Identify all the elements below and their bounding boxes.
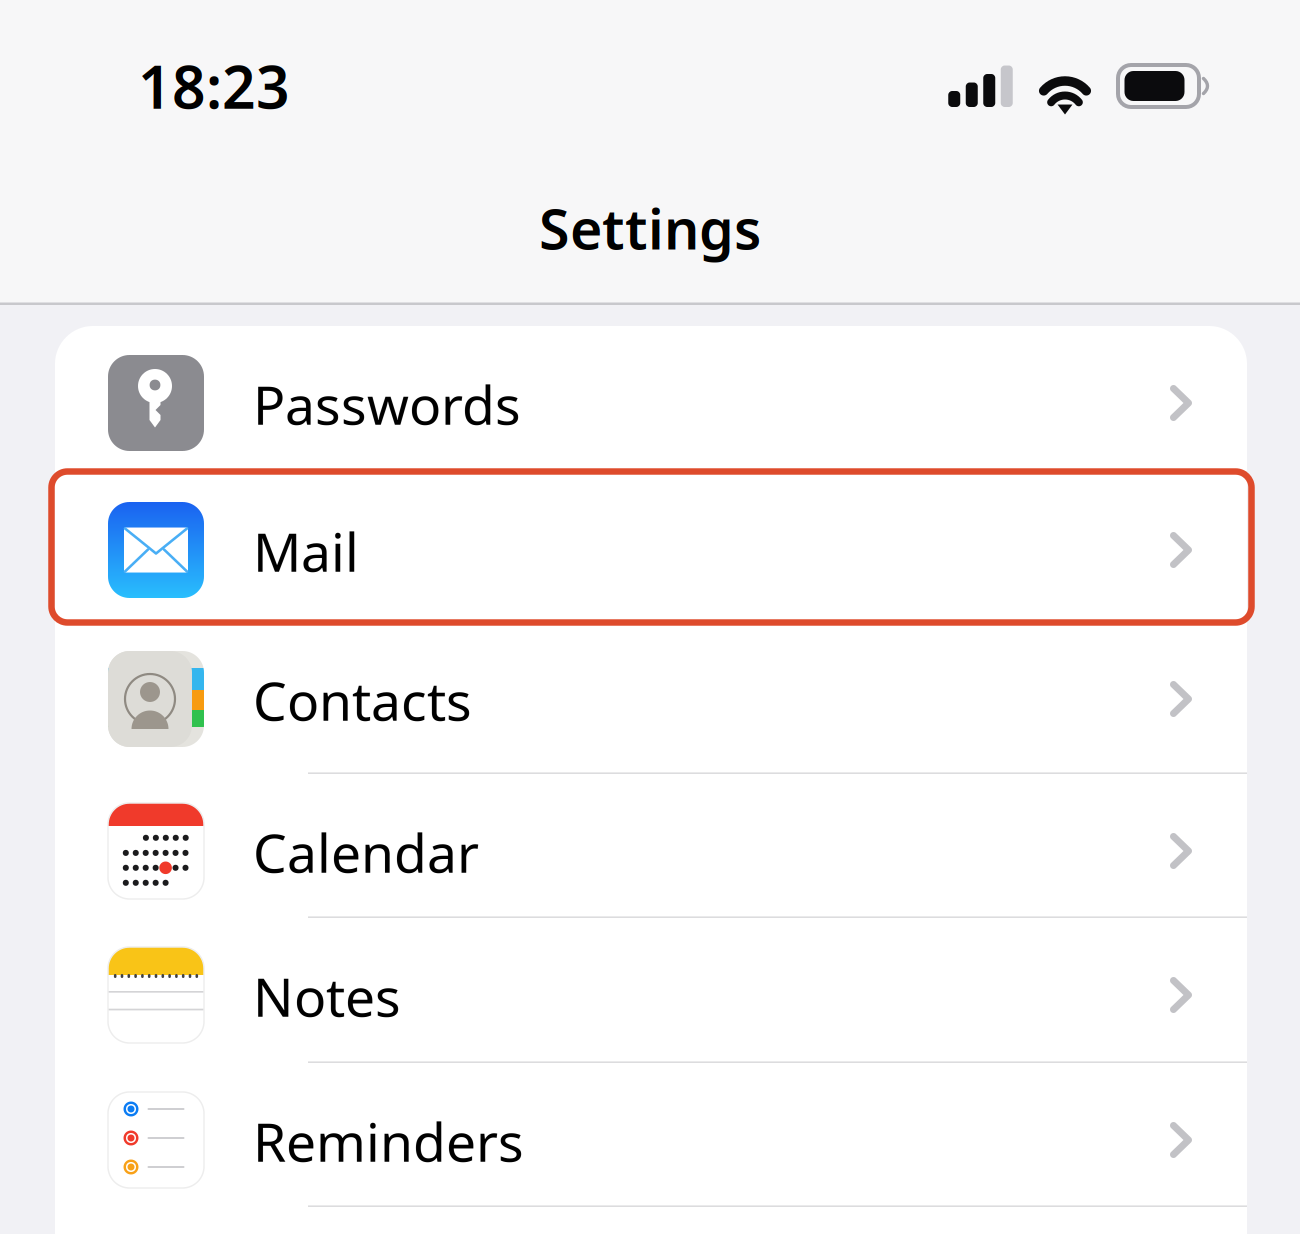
- staticText: Passwords: [253, 368, 521, 440]
- button[interactable]: Passwords: [55, 326, 1247, 473]
- staticText: Calendar: [253, 816, 479, 888]
- button[interactable]: Notes: [55, 918, 1247, 1063]
- staticText: Mail: [253, 515, 359, 587]
- staticText: Settings: [539, 190, 761, 266]
- staticText: 18:23: [138, 46, 290, 126]
- staticText: Notes: [253, 960, 401, 1032]
- staticText: Contacts: [253, 664, 472, 736]
- button[interactable]: Calendar: [55, 774, 1247, 918]
- staticText: Reminders: [253, 1105, 524, 1177]
- button[interactable]: Mail: [55, 473, 1247, 622]
- button[interactable]: Reminders: [55, 1063, 1247, 1207]
- button[interactable]: Contacts: [55, 622, 1247, 774]
